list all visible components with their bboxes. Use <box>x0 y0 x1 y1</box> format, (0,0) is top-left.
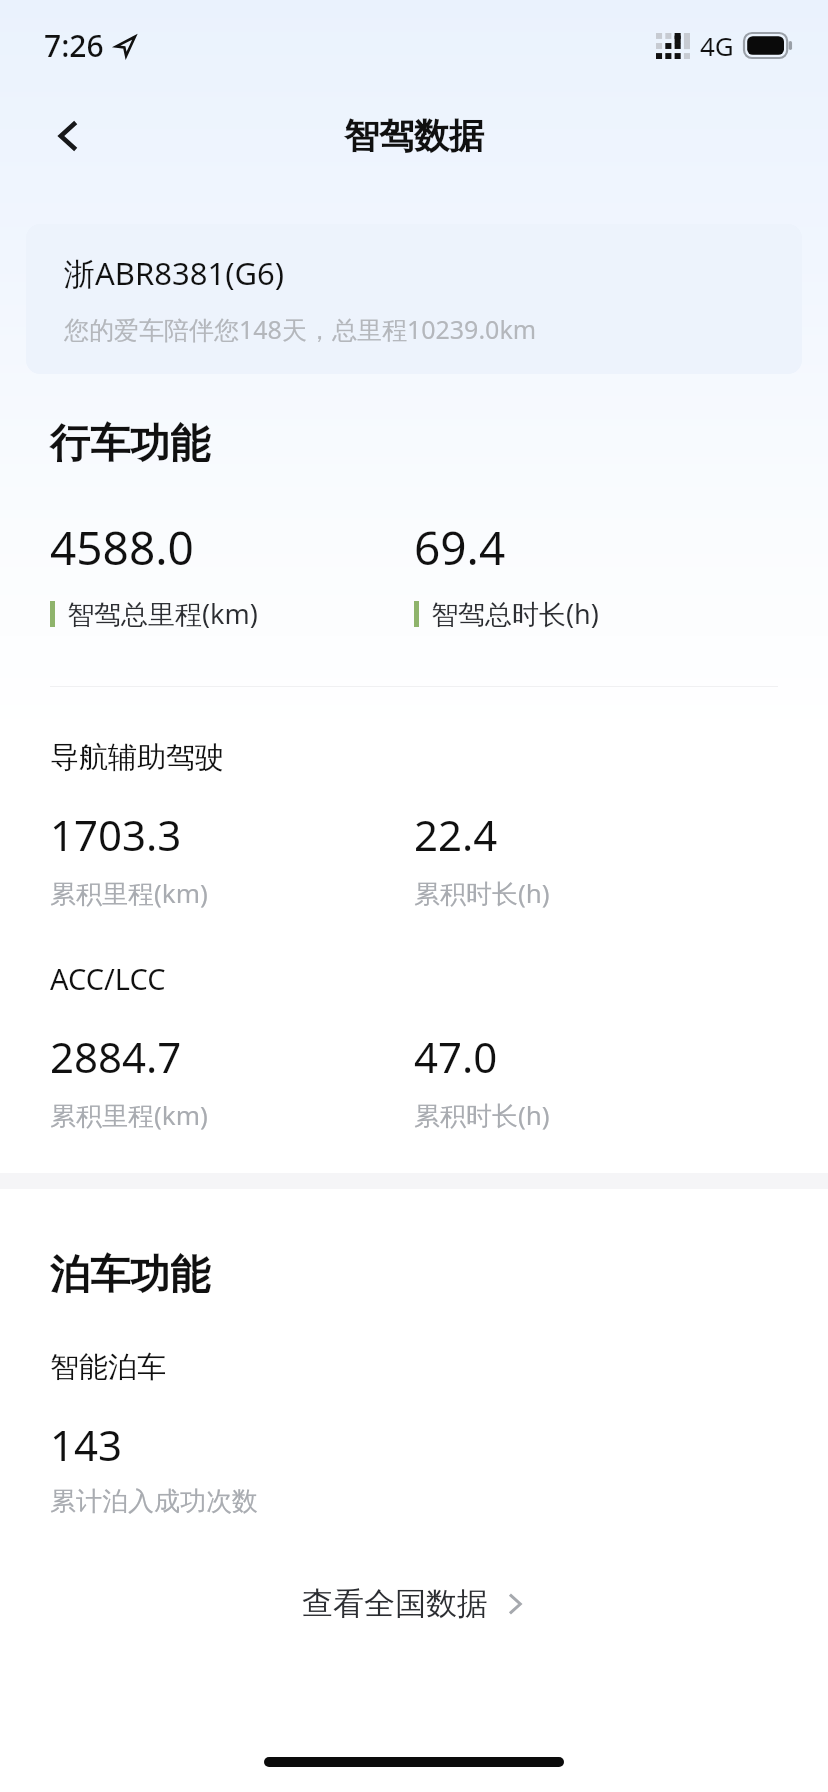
staticText: 4G <box>700 28 734 63</box>
staticText: 浙ABR8381(G6) <box>64 252 285 294</box>
staticText: 69.4 <box>414 516 506 579</box>
staticText: 智驾数据 <box>344 114 484 158</box>
staticText: 47.0 <box>414 1028 498 1085</box>
staticText: 泊车功能 <box>50 1249 210 1299</box>
staticText: 4588.0 <box>50 516 194 579</box>
staticText: 累积里程(km) <box>50 1097 208 1133</box>
staticText: ACC/LCC <box>50 959 166 998</box>
staticText: 累积时长(h) <box>414 875 550 911</box>
staticText: 行车功能 <box>50 418 210 468</box>
staticText: 您的爱车陪伴您148天，总里程10239.0km <box>64 312 537 346</box>
staticText: 智能泊车 <box>50 1349 166 1386</box>
button[interactable]: Back <box>34 102 102 170</box>
button[interactable]: 查看全国数据 <box>284 1574 544 1633</box>
staticText: 22.4 <box>414 806 498 863</box>
staticText: 导航辅助驾驶 <box>50 739 224 776</box>
staticText: 查看全国数据 <box>302 1584 488 1623</box>
staticText: 累积里程(km) <box>50 875 208 911</box>
staticText: 143 <box>50 1416 123 1473</box>
staticText: 1703.3 <box>50 806 182 863</box>
staticText: 累积时长(h) <box>414 1097 550 1133</box>
staticText: 2884.7 <box>50 1028 182 1085</box>
button[interactable]: 浙ABR8381(G6) <box>26 224 802 374</box>
staticText: 智驾总里程(km) <box>67 595 258 632</box>
staticText: 智驾总时长(h) <box>431 595 599 632</box>
staticText: 7:26 <box>44 25 104 66</box>
staticText: 累计泊入成功次数 <box>50 1485 258 1518</box>
